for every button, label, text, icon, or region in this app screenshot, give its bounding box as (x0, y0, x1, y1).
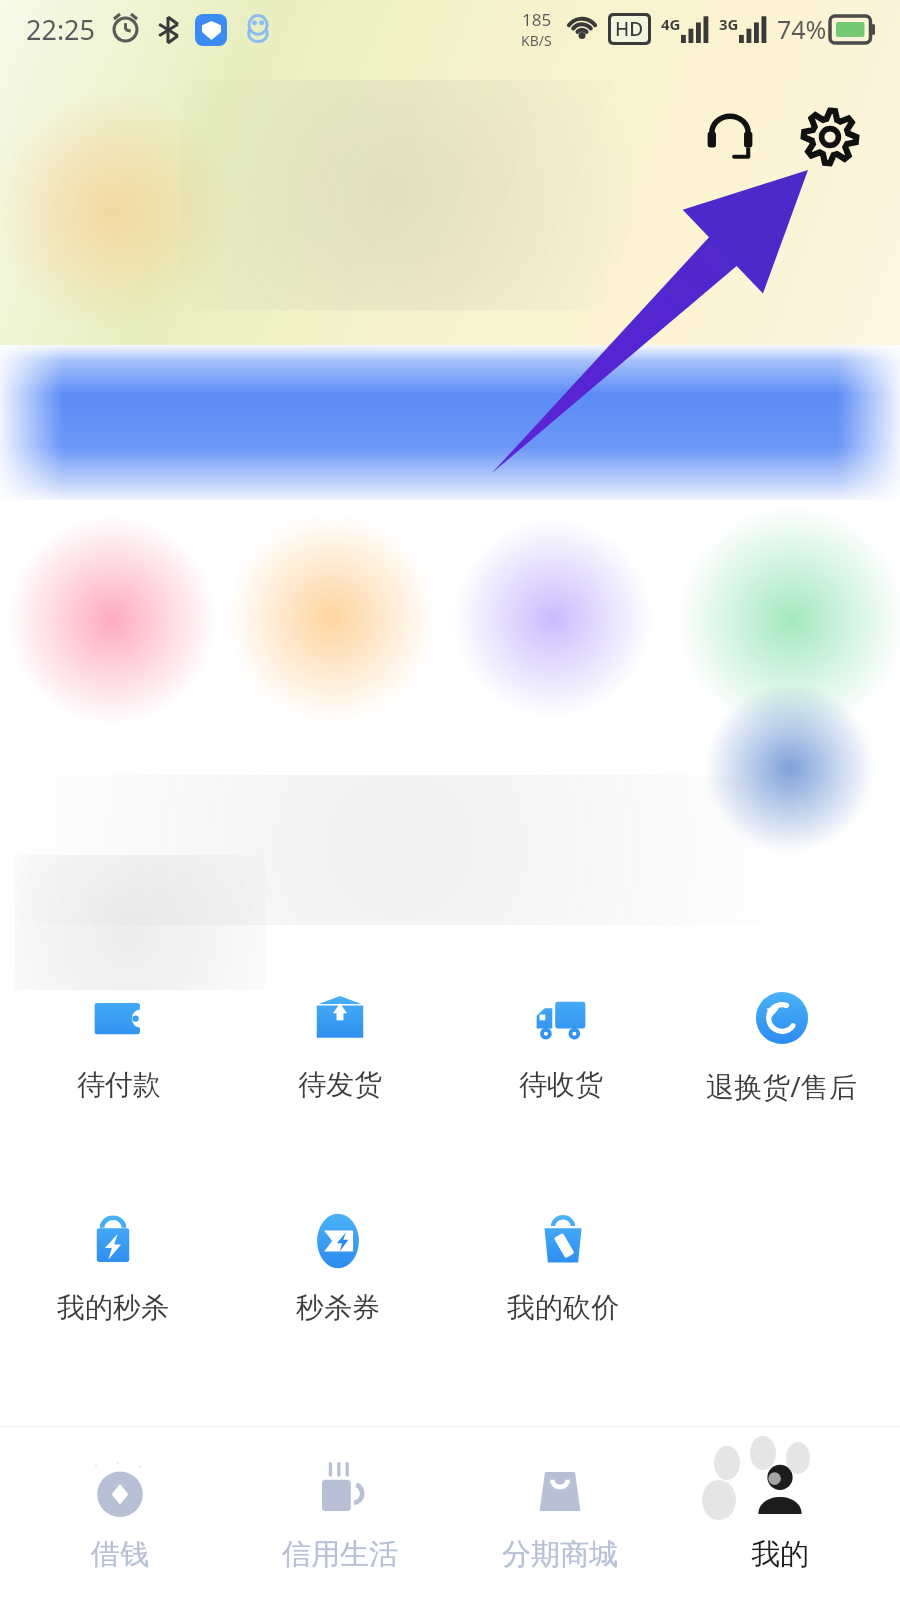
staticText: 分期商城 (502, 1536, 618, 1573)
button[interactable]: 我的 (680, 1438, 880, 1573)
button[interactable]: 待付款 (16, 985, 221, 1106)
button[interactable]: 分期商城 (460, 1438, 660, 1573)
button[interactable]: 我的砍价 (460, 1208, 665, 1329)
staticText: 待付款 (77, 1067, 161, 1102)
staticText: 借钱 (91, 1536, 149, 1573)
button[interactable]: 待发货 (237, 985, 442, 1106)
staticText: 我的秒杀 (57, 1290, 169, 1325)
staticText: 22:25 (26, 11, 96, 48)
staticText: 3G (719, 14, 739, 34)
button[interactable]: 信用生活 (240, 1438, 440, 1573)
staticText: 退换货/售后 (706, 1067, 857, 1105)
button[interactable]: Customer service (698, 105, 762, 169)
staticText: 185 (522, 8, 552, 31)
button[interactable]: Settings (798, 105, 862, 169)
staticText: HD (615, 16, 644, 42)
button[interactable]: 秒杀券 (235, 1208, 440, 1329)
staticText: 待发货 (298, 1067, 382, 1102)
staticText: 秒杀券 (296, 1290, 380, 1325)
staticText: 信用生活 (282, 1536, 398, 1573)
button[interactable]: 退换货/售后 (679, 985, 884, 1109)
staticText: 我的砍价 (507, 1290, 619, 1325)
staticText: 待收货 (519, 1067, 603, 1102)
staticText: 4G (661, 14, 681, 34)
button[interactable]: 借钱 (20, 1438, 220, 1573)
staticText: 74% (777, 12, 827, 46)
staticText: KB/S (521, 31, 552, 50)
button[interactable]: 我的秒杀 (10, 1208, 215, 1329)
staticText: 我的 (751, 1536, 809, 1573)
button[interactable]: 待收货 (458, 985, 663, 1106)
